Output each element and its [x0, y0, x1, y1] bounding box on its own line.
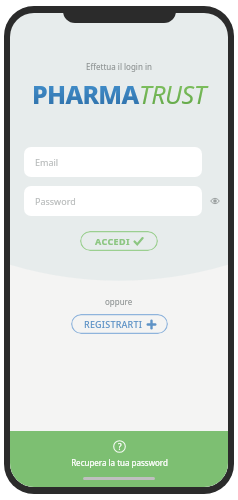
staticText: PHARMA: [32, 77, 139, 111]
staticText: REGISTRARTI: [84, 318, 143, 330]
staticText: ACCEDI: [95, 235, 130, 247]
button[interactable]: Password: [24, 186, 202, 216]
button[interactable]: Aiuto: [10, 431, 228, 487]
staticText: Recupera la tua password: [71, 457, 168, 468]
staticText: oppure: [105, 296, 133, 307]
button[interactable]: Mostra password: [207, 193, 223, 209]
staticText: ?: [118, 441, 122, 452]
staticText: Email: [35, 156, 59, 168]
button[interactable]: Email: [24, 147, 202, 177]
button[interactable]: ACCEDI: [80, 231, 158, 251]
other: Aiuto: [113, 440, 126, 453]
staticText: Effettua il login in: [86, 61, 152, 72]
button[interactable]: REGISTRARTI: [71, 314, 168, 334]
staticText: Password: [35, 195, 76, 207]
staticText: TRUST: [139, 77, 206, 111]
